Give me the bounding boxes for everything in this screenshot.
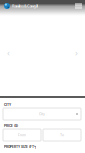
button[interactable]: From <box>3 129 41 141</box>
button[interactable]: Menu <box>75 3 82 8</box>
staticText: CITY <box>4 103 11 107</box>
button[interactable]: Previous image <box>4 48 13 57</box>
button[interactable]: City <box>3 108 81 120</box>
staticText: Rawlins & Cowgill <box>12 3 38 9</box>
staticText: ‹ <box>7 46 10 59</box>
staticText: To <box>60 133 64 137</box>
staticText: City <box>39 112 45 116</box>
staticText: From <box>18 133 26 137</box>
staticText: PRICE ($) <box>4 124 18 128</box>
button[interactable]: To <box>43 129 81 141</box>
staticText: PROPERTY SIZE (FT²) <box>4 145 36 149</box>
button[interactable]: Next image <box>72 48 81 57</box>
staticText: › <box>75 46 78 59</box>
